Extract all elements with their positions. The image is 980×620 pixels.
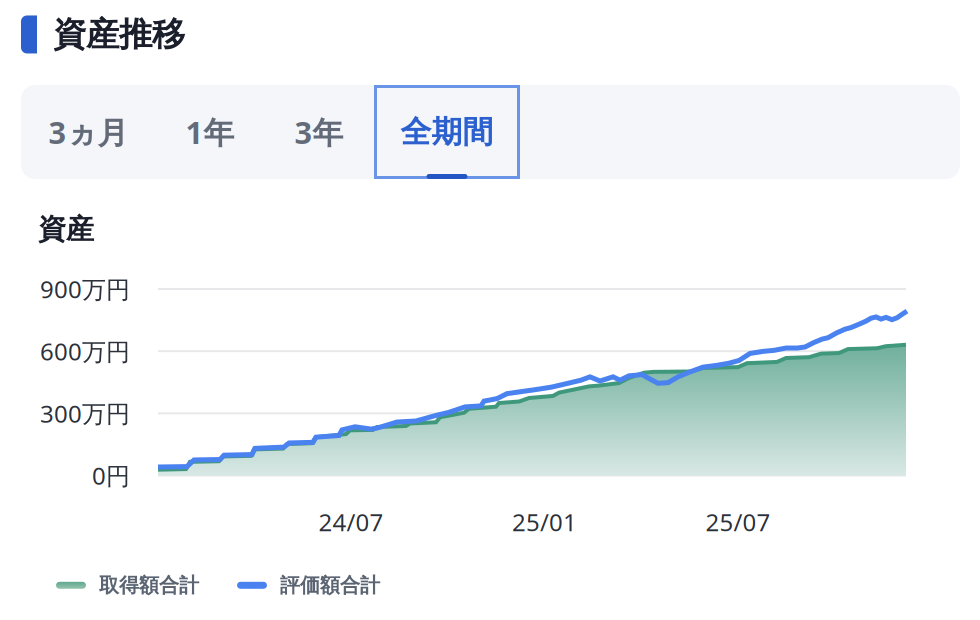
staticText: 資産推移: [53, 14, 185, 55]
staticText: 25/01: [512, 506, 577, 538]
button[interactable]: 全期間: [374, 85, 520, 179]
staticText: 全期間: [400, 113, 493, 151]
staticText: 3ヵ月: [48, 112, 128, 152]
staticText: 1年: [185, 112, 234, 152]
staticText: 900万円: [40, 273, 130, 305]
staticText: 評価額合計: [280, 573, 380, 598]
staticText: 3年: [294, 112, 343, 152]
staticText: 300万円: [40, 397, 130, 429]
staticText: 資産: [38, 212, 94, 246]
staticText: 25/07: [705, 506, 770, 538]
staticText: 600万円: [40, 335, 130, 367]
staticText: 取得額合計: [99, 573, 199, 598]
button[interactable]: 3年: [264, 85, 374, 179]
staticText: 24/07: [318, 506, 383, 538]
button[interactable]: 1年: [156, 85, 264, 179]
staticText: 0円: [92, 460, 130, 491]
button[interactable]: 3ヵ月: [21, 85, 156, 179]
